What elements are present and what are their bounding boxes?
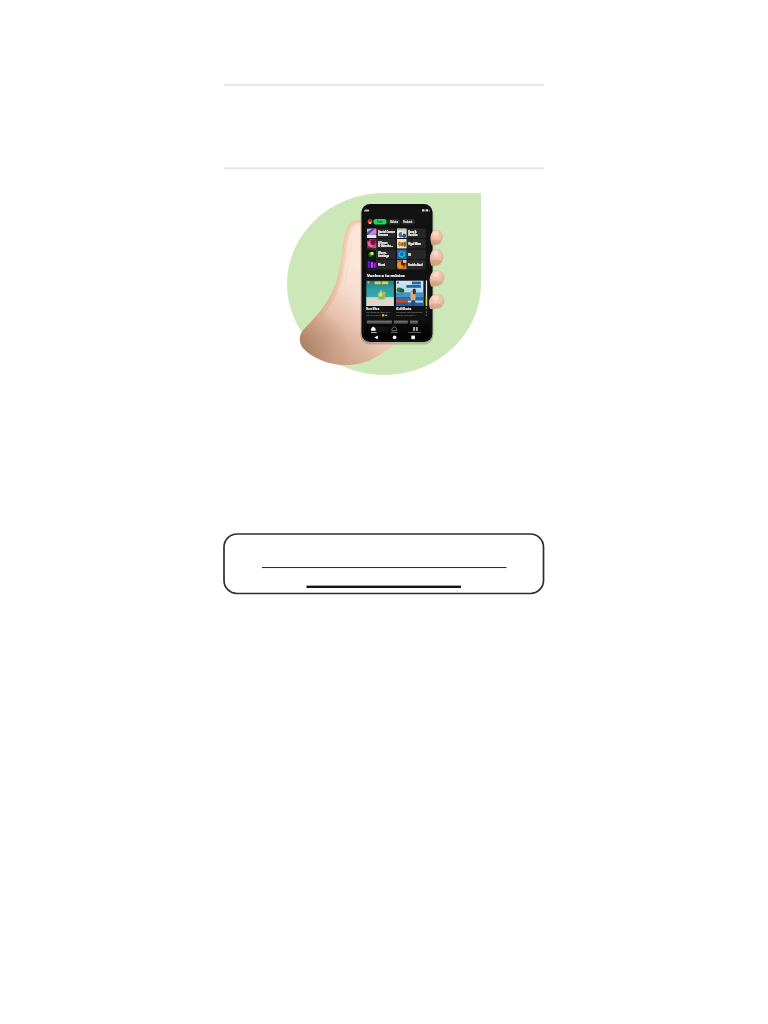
button[interactable]: Recent apps bbox=[407, 334, 417, 341]
button[interactable]: Profile bbox=[367, 218, 374, 225]
other: Article page bbox=[0, 0, 768, 1024]
staticText: Sonido Azul bbox=[408, 263, 423, 266]
staticText: Buen Vibra bbox=[366, 307, 380, 310]
button[interactable]: Worm Santiago bbox=[367, 249, 396, 259]
button[interactable]: Home bbox=[390, 334, 400, 341]
button[interactable]: Música filter bbox=[388, 218, 400, 225]
staticText: Para ponerle sabor a tu día con toda la bbox=[366, 311, 390, 317]
button[interactable]: Plumi bbox=[367, 260, 396, 270]
staticText: Buscar bbox=[391, 331, 399, 334]
button[interactable]: 90 bbox=[397, 249, 426, 259]
button[interactable]: Sonido Azul bbox=[397, 260, 426, 270]
staticText: Daniel Caesar Seasons bbox=[378, 230, 395, 236]
staticText: A Veces El Güincho... bbox=[378, 241, 393, 247]
staticText: Vuelve a tu música bbox=[367, 273, 405, 279]
staticText: Tu biblioteca bbox=[408, 331, 422, 334]
staticText: Canciones del pasado que suenan como hoy… bbox=[396, 311, 423, 317]
staticText: 90 bbox=[408, 253, 411, 256]
button[interactable]: Todo filter bbox=[374, 218, 387, 225]
staticText: Todo bbox=[377, 220, 383, 223]
button[interactable]: Podcast filter bbox=[402, 218, 416, 225]
button[interactable]: #LaDiMusica playlist bbox=[396, 280, 424, 315]
staticText: #LaDiMusica bbox=[396, 307, 412, 310]
button[interactable]: Viya! Mixx bbox=[397, 239, 426, 249]
staticText: Worm– Santiago bbox=[378, 251, 389, 257]
button[interactable]: Daniel Caesar Seasons bbox=[367, 229, 396, 239]
staticText: Podcast bbox=[403, 220, 413, 223]
staticText: Rosa & Versión bbox=[408, 230, 418, 236]
button[interactable]: A Veces El Güincho bbox=[367, 239, 396, 249]
button[interactable]: Back bbox=[373, 334, 383, 341]
button[interactable]: Inicio bbox=[366, 326, 382, 335]
staticText: Plumi bbox=[378, 263, 386, 266]
button[interactable]: Buscar bbox=[387, 326, 403, 335]
button[interactable]: Rosa & Versión bbox=[397, 229, 426, 239]
staticText: Viya! Mixx bbox=[408, 242, 421, 245]
staticText: Música bbox=[390, 220, 399, 223]
staticText: Inicio bbox=[371, 331, 377, 334]
button[interactable]: Buen Vibra playlist bbox=[366, 280, 394, 315]
button[interactable]: Tu biblioteca bbox=[407, 326, 425, 335]
